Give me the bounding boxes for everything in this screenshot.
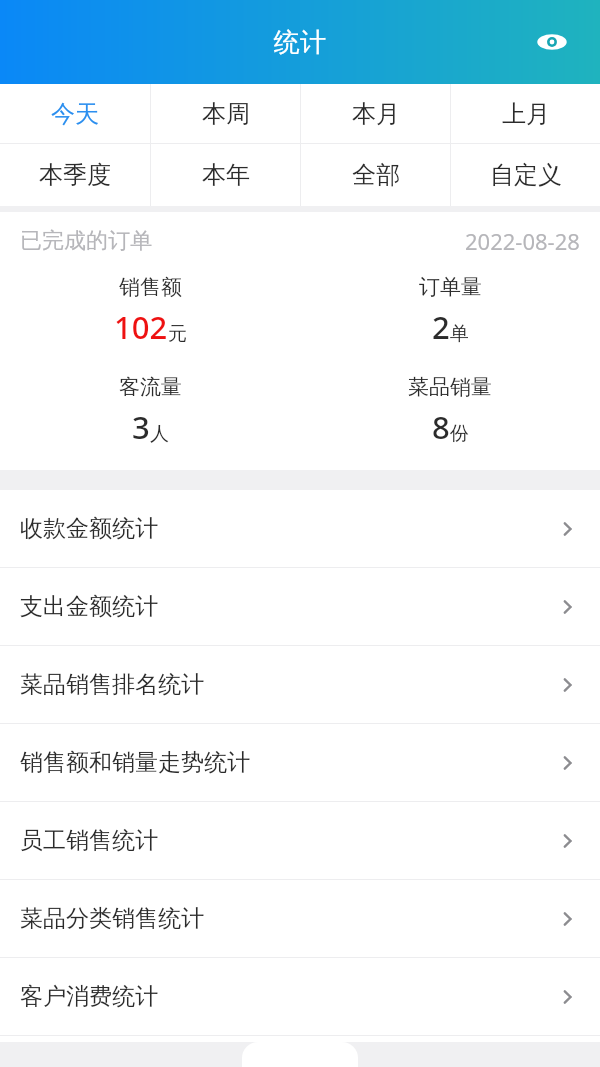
- staticText: 份: [450, 422, 469, 446]
- button[interactable]: 本月: [301, 84, 450, 143]
- staticText: 自定义: [490, 160, 562, 190]
- button[interactable]: 本周: [151, 84, 300, 143]
- staticText: 客户消费统计: [20, 982, 556, 1011]
- button[interactable]: 支出金额统计: [0, 568, 600, 645]
- button[interactable]: 菜品分类销售统计: [0, 880, 600, 957]
- staticText: 统计: [274, 26, 326, 59]
- staticText: 订单量: [419, 274, 482, 300]
- staticText: 102: [114, 306, 168, 348]
- staticText: 2022-08-28: [465, 226, 580, 256]
- staticText: 支出金额统计: [20, 592, 556, 621]
- staticText: 菜品分类销售统计: [20, 904, 556, 933]
- button[interactable]: 本年: [151, 144, 300, 206]
- button[interactable]: 今天: [0, 84, 150, 143]
- staticText: 销售额: [119, 274, 182, 300]
- staticText: 单: [450, 322, 469, 346]
- staticText: 员工销售统计: [20, 826, 556, 855]
- button[interactable]: Toggle visibility: [530, 20, 574, 64]
- staticText: 已完成的订单: [20, 227, 465, 255]
- button[interactable]: 菜品销售排名统计: [0, 646, 600, 723]
- staticText: 收款金额统计: [20, 514, 556, 543]
- staticText: 2: [432, 306, 450, 348]
- button[interactable]: 全部: [301, 144, 450, 206]
- button[interactable]: 销售额和销量走势统计: [0, 724, 600, 801]
- staticText: 元: [168, 322, 187, 346]
- staticText: 全部: [352, 160, 400, 190]
- button[interactable]: 收款金额统计: [0, 490, 600, 567]
- staticText: 菜品销量: [408, 374, 492, 400]
- button[interactable]: 本季度: [0, 144, 150, 206]
- staticText: 销售额和销量走势统计: [20, 748, 556, 777]
- staticText: 本月: [352, 99, 400, 129]
- staticText: 本年: [202, 160, 250, 190]
- button[interactable]: 自定义: [451, 144, 600, 206]
- staticText: 上月: [502, 99, 550, 129]
- button[interactable]: 客户消费统计: [0, 958, 600, 1035]
- staticText: 客流量: [119, 374, 182, 400]
- staticText: 8: [432, 406, 450, 448]
- staticText: 人: [150, 422, 169, 446]
- staticText: 3: [132, 406, 150, 448]
- staticText: 本季度: [39, 160, 111, 190]
- staticText: 今天: [51, 99, 99, 129]
- button[interactable]: 上月: [451, 84, 600, 143]
- staticText: 菜品销售排名统计: [20, 670, 556, 699]
- button[interactable]: 员工销售统计: [0, 802, 600, 879]
- staticText: 本周: [202, 99, 250, 129]
